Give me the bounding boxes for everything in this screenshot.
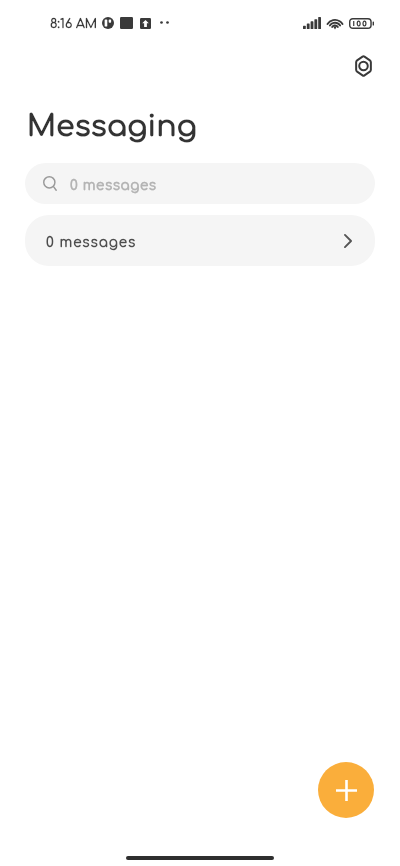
button[interactable]: New message [318,762,374,818]
staticText: Messaging [27,110,197,143]
button[interactable]: 0 messages [25,163,375,204]
staticText: 8:16 AM [50,17,98,31]
staticText: 0 messages [70,178,157,193]
staticText: 0 messages [46,235,137,250]
button[interactable]: Settings [344,47,382,85]
button[interactable]: 0 messages [25,215,375,266]
